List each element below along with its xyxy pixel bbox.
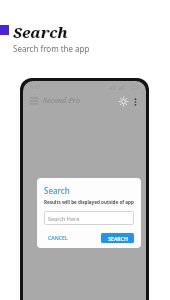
staticText: Search from the app	[13, 43, 90, 54]
button[interactable]: Search Here	[44, 211, 134, 225]
staticText: Second Pro	[43, 96, 81, 106]
staticText: Search	[44, 185, 70, 196]
staticText: CANCEL	[48, 234, 68, 241]
button[interactable]: More options	[130, 96, 141, 107]
staticText: Search Here	[48, 215, 80, 222]
staticText: Results will be displayed outside of app	[44, 199, 134, 205]
button[interactable]: CANCEL	[46, 232, 70, 243]
staticText: Search	[13, 22, 68, 42]
button[interactable]: Open navigation menu	[28, 95, 40, 107]
button[interactable]: SEARCH	[101, 233, 134, 243]
staticText: SEARCH	[108, 235, 128, 242]
staticText: 4:43	[30, 84, 40, 91]
button[interactable]: Toggle theme	[117, 95, 130, 108]
